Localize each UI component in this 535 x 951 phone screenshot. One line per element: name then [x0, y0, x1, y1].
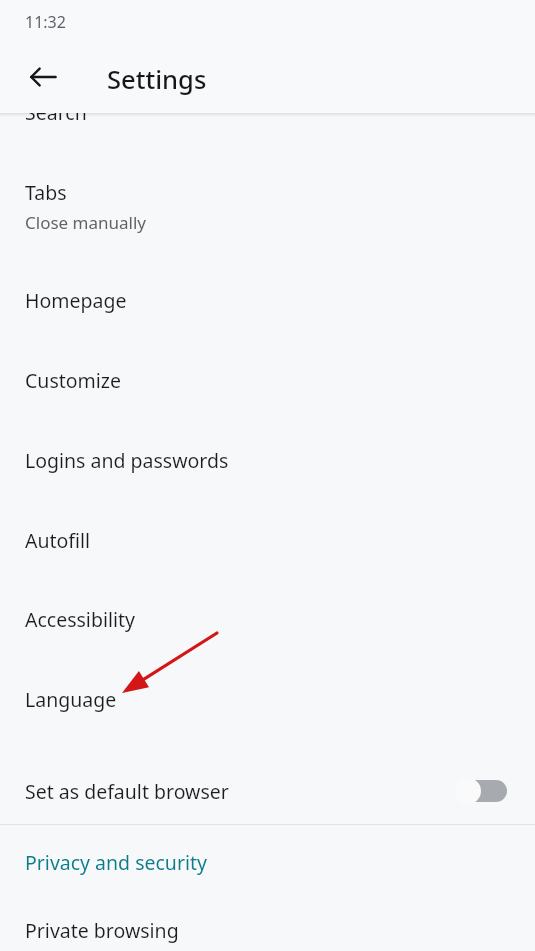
button[interactable]: Tabs	[0, 170, 535, 246]
staticText: Tabs	[25, 179, 67, 206]
staticText: Homepage	[25, 287, 127, 314]
staticText: Customize	[25, 367, 121, 394]
button[interactable]: Set as default browser toggle	[455, 774, 507, 808]
button[interactable]: Accessibility	[0, 597, 535, 659]
button[interactable]: Search	[0, 90, 535, 152]
button[interactable]: Back	[19, 53, 67, 101]
staticText: Set as default browser	[25, 778, 455, 805]
staticText: Logins and passwords	[25, 447, 229, 474]
staticText: Close manually	[25, 211, 146, 234]
staticText: Language	[25, 686, 117, 713]
staticText: Privacy and security	[25, 849, 207, 876]
button[interactable]: Language	[0, 677, 535, 739]
button[interactable]: Homepage	[0, 278, 535, 340]
staticText: Private browsing	[25, 917, 179, 944]
button[interactable]: Logins and passwords	[0, 438, 535, 500]
staticText: 11:32	[25, 11, 66, 33]
button[interactable]: Autofill	[0, 518, 535, 580]
staticText: Accessibility	[25, 606, 135, 633]
staticText: Settings	[107, 62, 207, 97]
staticText: Autofill	[25, 527, 91, 554]
button[interactable]: Private browsing	[0, 908, 535, 951]
button[interactable]: Customize	[0, 358, 535, 420]
button[interactable]: Set as default browser	[0, 757, 535, 825]
staticText: Search	[25, 99, 87, 126]
button[interactable]: Privacy and security	[0, 832, 535, 892]
